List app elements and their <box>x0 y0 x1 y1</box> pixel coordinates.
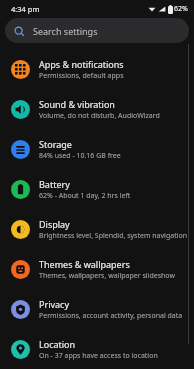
staticText: Brightness level, Splendid, system navig… <box>39 231 188 241</box>
staticText: Themes, wallpapers, wallpaper slideshow <box>39 271 175 281</box>
staticText: Permissions, default apps <box>39 71 124 81</box>
button[interactable]: Battery <box>0 169 194 209</box>
staticText: Battery <box>39 178 70 190</box>
staticText: Display <box>39 218 70 230</box>
staticText: Sound & vibration <box>39 98 115 110</box>
staticText: On - 37 apps have access to location <box>39 351 158 361</box>
button[interactable]: Location <box>0 329 194 369</box>
button[interactable]: Sound & vibration <box>0 89 194 129</box>
staticText: Volume, do not disturb, AudioWizard <box>39 111 160 121</box>
button[interactable]: Search settings <box>5 18 189 43</box>
staticText: Search settings <box>33 25 98 37</box>
staticText: 62% - About 1 day, 2 hrs left <box>39 191 131 201</box>
staticText: Location <box>39 338 76 350</box>
staticText: 84% used - 10.16 GB free <box>39 151 121 161</box>
staticText: Storage <box>39 138 72 150</box>
button[interactable]: Privacy <box>0 289 194 329</box>
staticText: Privacy <box>39 298 70 310</box>
button[interactable]: Themes & wallpapers <box>0 249 194 289</box>
button[interactable]: Display <box>0 209 194 249</box>
staticText: Permissions, account activity, personal … <box>39 311 183 321</box>
staticText: 62% <box>174 4 188 14</box>
staticText: Apps & notifications <box>39 58 124 70</box>
button[interactable]: Apps & notifications <box>0 49 194 89</box>
staticText: Themes & wallpapers <box>39 258 130 270</box>
button[interactable]: Storage <box>0 129 194 169</box>
staticText: 4:34 pm <box>11 4 40 14</box>
